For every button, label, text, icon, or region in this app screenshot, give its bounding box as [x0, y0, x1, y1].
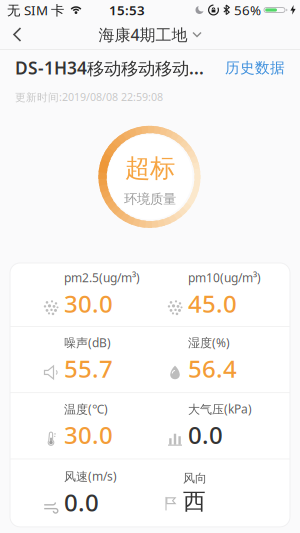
staticText: 45.0 — [188, 287, 237, 319]
button[interactable]: 历史数据 — [219, 55, 291, 81]
staticText: 更新时间:2019/08/08 22:59:08 — [15, 90, 163, 104]
staticText: 温度(℃) — [64, 401, 108, 417]
staticText: 30.0 — [64, 419, 113, 451]
staticText: 风向 — [183, 471, 207, 485]
button[interactable]: Back — [0, 20, 24, 49]
staticText: 15:53 — [109, 1, 145, 19]
staticText: 55.7 — [64, 353, 113, 384]
staticText: pm10(ug/m³) — [188, 270, 261, 285]
button[interactable]: 切换工地 — [98, 24, 201, 45]
staticText: pm2.5(ug/m³) — [64, 270, 140, 285]
staticText: 大气压(kPa) — [188, 401, 252, 417]
staticText: 超标 — [125, 153, 175, 184]
staticText: 无 SIM 卡 — [7, 1, 64, 19]
staticText: 湿度(%) — [188, 335, 230, 350]
staticText: 56% — [234, 1, 261, 19]
staticText: 0.0 — [64, 486, 99, 518]
staticText: 噪声(dB) — [64, 335, 111, 350]
staticText: 环境质量 — [124, 191, 176, 207]
staticText: 0.0 — [188, 419, 223, 451]
staticText: DS-1H34移动移动移动... — [15, 56, 204, 79]
staticText: 30.0 — [64, 287, 113, 319]
staticText: 西 — [183, 488, 206, 515]
staticText: 56.4 — [188, 353, 237, 384]
staticText: 风速(m/s) — [64, 468, 117, 484]
staticText: 海康4期工地 — [98, 24, 187, 45]
staticText: 历史数据 — [225, 59, 285, 77]
